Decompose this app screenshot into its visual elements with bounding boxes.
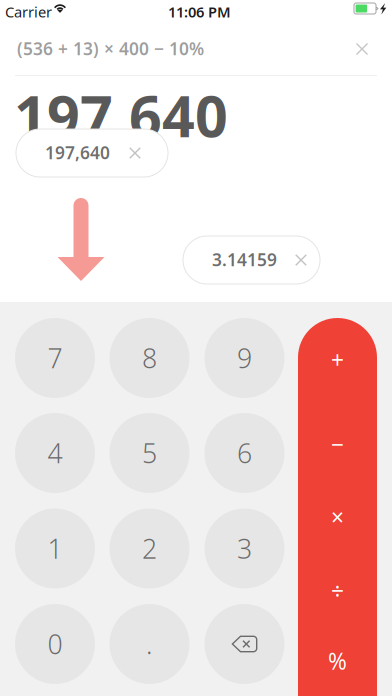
- button[interactable]: ÷: [298, 556, 377, 626]
- button[interactable]: 0: [15, 604, 95, 684]
- staticText: 0: [47, 626, 62, 662]
- button[interactable]: %: [298, 626, 377, 696]
- staticText: (536 + 13) × 400 − 10%: [17, 37, 204, 60]
- button[interactable]: 2: [109, 508, 189, 588]
- staticText: .: [146, 626, 153, 662]
- staticText: −: [331, 429, 344, 459]
- button[interactable]: 7: [15, 318, 95, 398]
- staticText: 8: [142, 340, 157, 376]
- staticText: 197,640: [14, 77, 228, 153]
- staticText: Carrier: [5, 2, 52, 21]
- button[interactable]: .: [109, 604, 189, 684]
- staticText: 3: [237, 531, 252, 566]
- button[interactable]: 1: [15, 508, 95, 588]
- staticText: 1: [47, 531, 62, 566]
- button[interactable]: 8: [109, 318, 189, 398]
- staticText: 6: [237, 435, 252, 471]
- staticText: 4: [47, 435, 62, 471]
- staticText: 9: [237, 340, 252, 376]
- staticText: 7: [47, 340, 62, 376]
- button[interactable]: 4: [15, 413, 95, 493]
- staticText: ÷: [331, 576, 344, 606]
- button[interactable]: 3.14159: [183, 236, 320, 284]
- button[interactable]: Clear expression: [340, 27, 384, 71]
- button[interactable]: 9: [204, 318, 284, 398]
- staticText: +: [331, 345, 344, 375]
- button[interactable]: −: [298, 409, 377, 479]
- staticText: 2: [142, 531, 157, 566]
- staticText: %: [328, 646, 347, 676]
- button[interactable]: 5: [109, 413, 189, 493]
- staticText: 5: [142, 435, 157, 471]
- staticText: 3.14159: [212, 248, 277, 271]
- staticText: 197,640: [45, 141, 110, 164]
- button[interactable]: ×: [298, 482, 377, 552]
- button[interactable]: +: [298, 325, 377, 395]
- button[interactable]: 3: [204, 508, 284, 588]
- staticText: ×: [331, 502, 344, 532]
- staticText: 11:06 PM: [168, 2, 231, 21]
- button[interactable]: 197,640: [16, 129, 168, 177]
- button[interactable]: Delete: [204, 604, 284, 684]
- button[interactable]: 6: [204, 413, 284, 493]
